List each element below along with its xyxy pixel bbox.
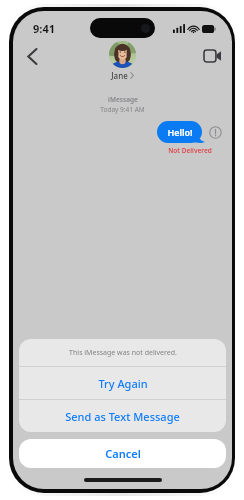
staticText: iMessage	[108, 95, 138, 104]
button[interactable]: Back	[17, 41, 47, 71]
button[interactable]: Send as Text Message	[19, 400, 226, 432]
staticText: Jane	[111, 70, 128, 81]
button[interactable]: FaceTime	[197, 41, 227, 71]
button[interactable]: Try Again	[19, 367, 226, 399]
staticText: 9:41	[33, 21, 55, 36]
staticText: Not Delivered	[168, 146, 212, 155]
button[interactable]: Message not delivered	[209, 126, 222, 139]
staticText: Today 9:41 AM	[100, 105, 145, 114]
staticText: Send as Text Message	[65, 409, 180, 424]
button[interactable]: Jane	[109, 41, 136, 81]
staticText: This iMessage was not delivered.	[69, 348, 177, 358]
staticText: Cancel	[105, 446, 141, 461]
staticText: Try Again	[98, 376, 148, 391]
staticText: Hello!	[167, 126, 193, 138]
button[interactable]: Cancel	[19, 439, 226, 468]
